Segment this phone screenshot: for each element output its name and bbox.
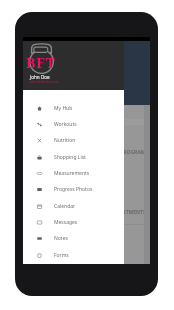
staticText: Workouts	[54, 121, 77, 128]
button[interactable]: Notes	[23, 230, 124, 246]
staticText: Progress Photos	[54, 186, 93, 193]
staticText: Calendar	[54, 203, 76, 210]
button[interactable]: Calendar	[23, 198, 124, 214]
staticText: Forms	[54, 252, 69, 259]
button[interactable]: Workouts	[23, 116, 124, 132]
button[interactable]: Nutrition	[23, 132, 124, 148]
button[interactable]: My Hub	[23, 100, 124, 116]
staticText: BFT	[26, 53, 56, 72]
staticText: john.doe@client.com	[30, 80, 59, 84]
staticText: Measurements	[54, 170, 90, 177]
staticText: My Hub	[54, 105, 73, 112]
staticText: Shopping List	[54, 154, 86, 161]
staticText: John Doe	[30, 74, 50, 80]
staticText: APPOINTMENTS	[106, 209, 146, 216]
staticText: Messages	[54, 219, 78, 226]
button[interactable]: Forms	[23, 247, 124, 263]
staticText: MY PROGRAM	[111, 149, 146, 156]
button[interactable]: Messages	[23, 214, 124, 230]
button[interactable]: Shopping List	[23, 149, 124, 165]
staticText: Notes	[54, 235, 68, 242]
button[interactable]: Measurements	[23, 165, 124, 181]
staticText: Nutrition	[54, 137, 76, 144]
button[interactable]: Progress Photos	[23, 181, 124, 197]
